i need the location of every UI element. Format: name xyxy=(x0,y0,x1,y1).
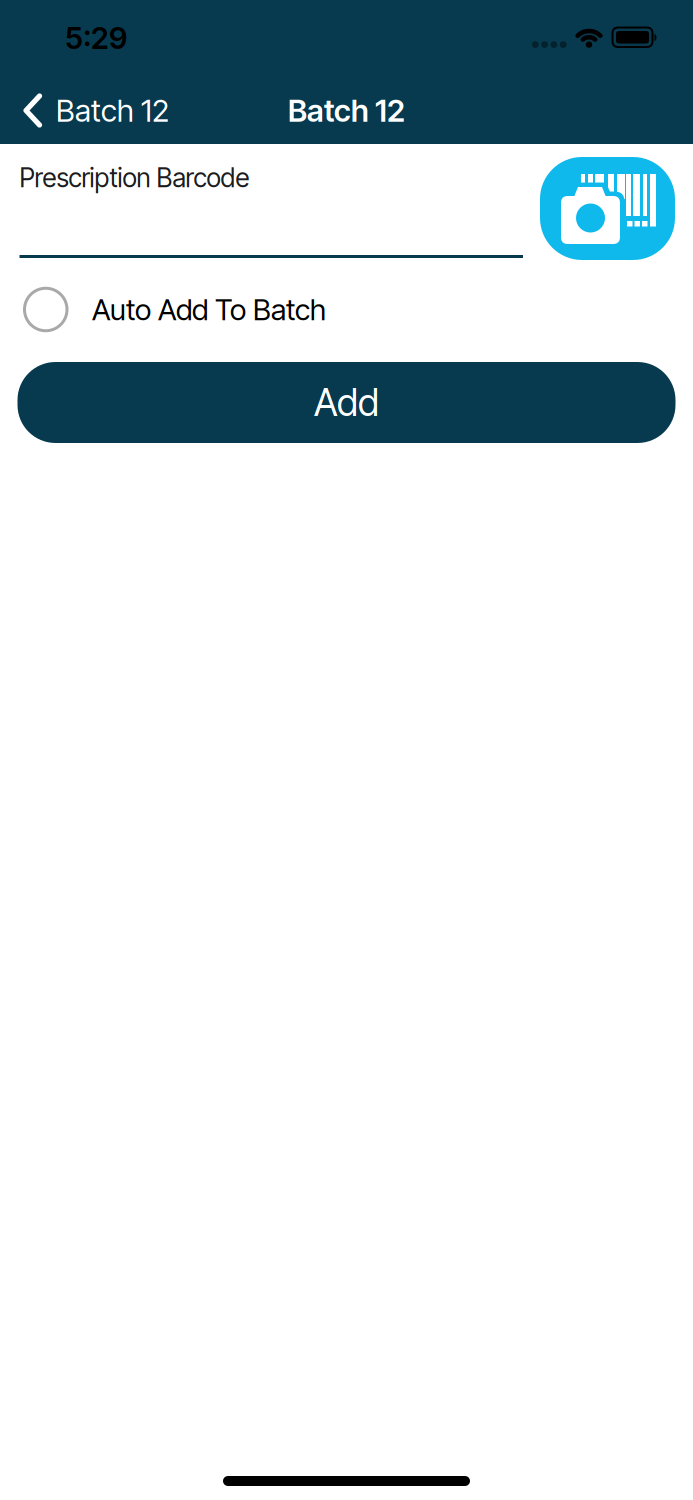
staticText: Add xyxy=(314,380,379,425)
button[interactable]: Back xyxy=(23,90,171,130)
button[interactable]: Add xyxy=(17,362,675,443)
staticText: Auto Add To Batch xyxy=(92,292,326,327)
staticText: Prescription Barcode xyxy=(19,162,249,193)
staticText: Batch 12 xyxy=(56,92,169,129)
button[interactable]: Prescription Barcode xyxy=(19,162,523,258)
button[interactable]: Auto Add To Batch xyxy=(24,284,336,334)
staticText: 5:29 xyxy=(65,20,127,56)
button[interactable]: Scan Barcode xyxy=(540,157,675,260)
staticText: Batch 12 xyxy=(288,92,405,129)
